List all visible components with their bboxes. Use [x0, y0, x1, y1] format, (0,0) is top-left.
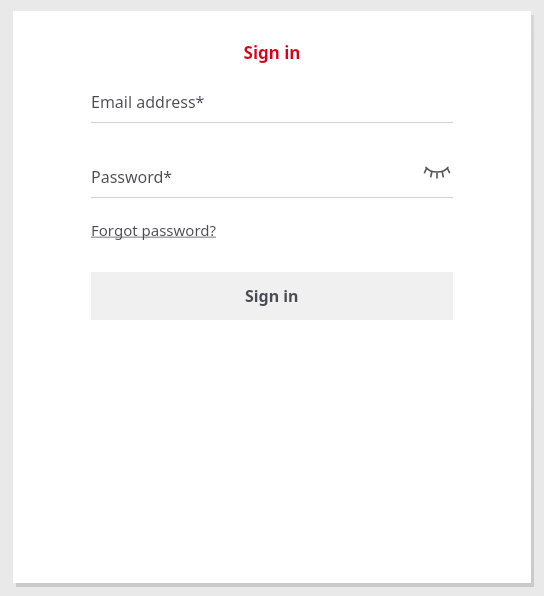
button[interactable]: Show password — [421, 154, 453, 186]
button[interactable]: Sign in — [91, 272, 453, 320]
staticText: Sign in — [245, 285, 299, 307]
button[interactable]: Forgot password? — [91, 220, 217, 240]
staticText: Sign in — [13, 41, 531, 64]
staticText: Email address* — [91, 91, 205, 113]
button[interactable]: Email address* — [91, 91, 453, 123]
button[interactable]: Password* — [91, 166, 453, 188]
staticText: Password* — [91, 166, 173, 188]
